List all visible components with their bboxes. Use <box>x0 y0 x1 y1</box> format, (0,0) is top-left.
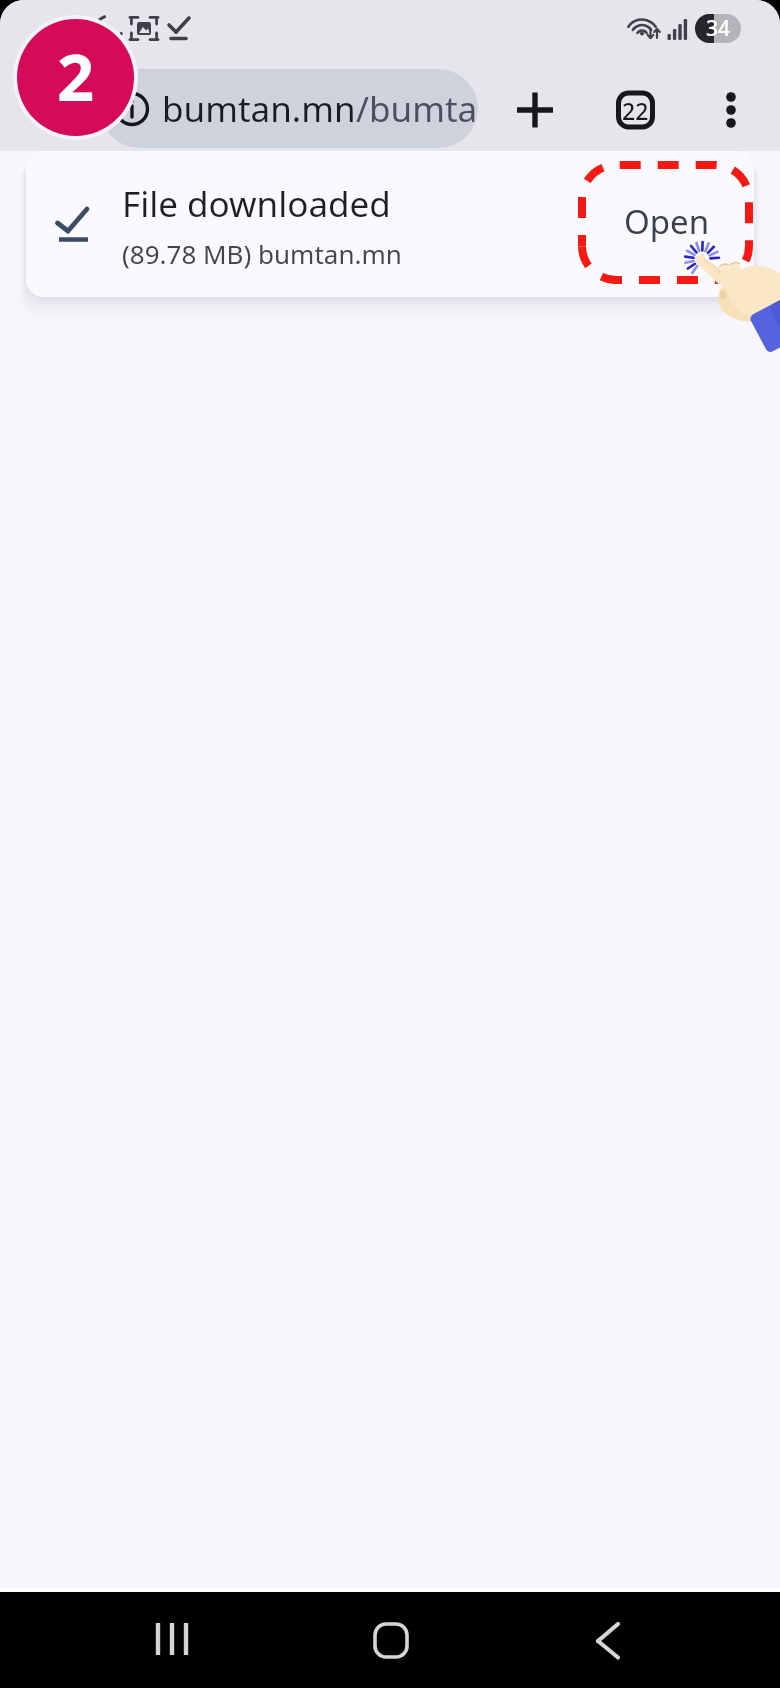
staticText: File downloaded <box>122 180 391 228</box>
staticText: (89.78 MB) bumtan.mn <box>122 236 402 271</box>
button[interactable]: File downloaded <box>26 151 754 297</box>
button[interactable]: New tab <box>505 80 565 140</box>
button[interactable]: Recent apps <box>132 1599 212 1679</box>
button[interactable]: More options <box>701 80 761 140</box>
staticText: bumtan.mn <box>162 85 356 133</box>
staticText: /bumtanxyz <box>356 85 478 133</box>
button[interactable]: Home <box>349 1599 429 1679</box>
staticText: Open <box>624 199 710 244</box>
button[interactable]: bumtan.mn <box>100 69 478 148</box>
staticText: 22 <box>622 95 649 126</box>
button[interactable]: Switch tabs <box>605 80 665 140</box>
staticText: 2 <box>57 32 95 121</box>
button[interactable]: Open <box>592 173 742 269</box>
staticText: 34 <box>706 14 731 43</box>
button[interactable]: Back <box>567 1599 647 1679</box>
